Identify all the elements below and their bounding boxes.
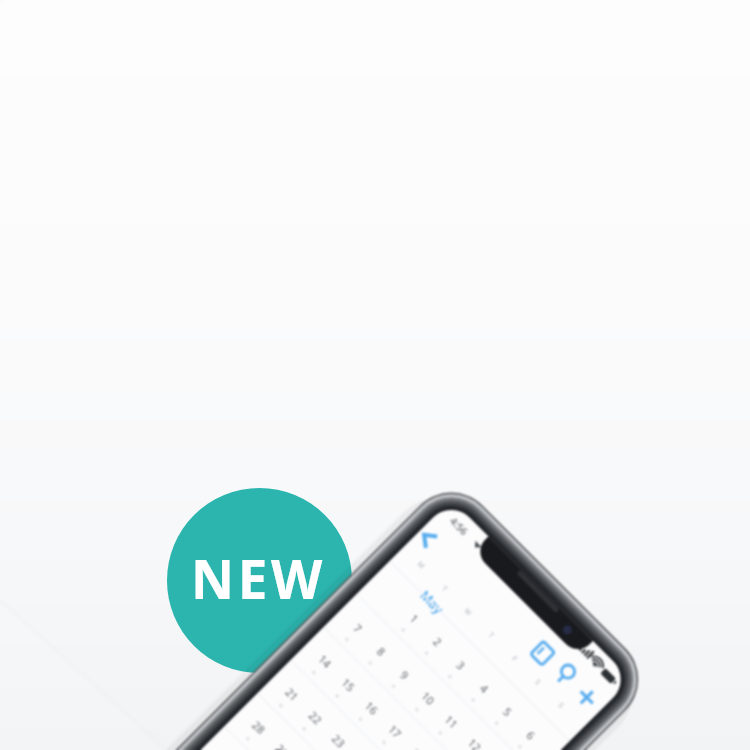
staticText: NEW [191,542,326,614]
button[interactable]: NEW [167,488,352,673]
other: Calendar app preview [0,0,750,750]
